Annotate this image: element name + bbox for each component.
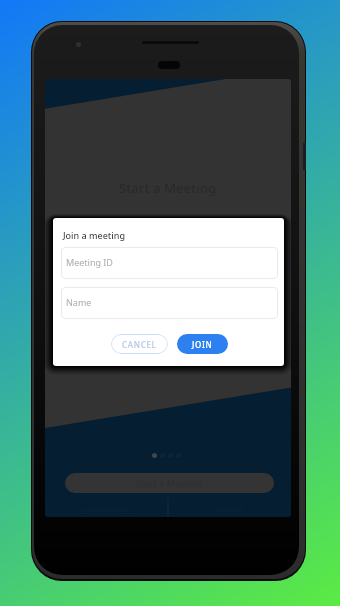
staticText: JOIN [192, 339, 213, 350]
staticText: Meeting ID [66, 256, 113, 268]
staticText: CANCEL [122, 339, 157, 350]
staticText: Name [66, 296, 92, 308]
button[interactable]: Name [61, 287, 278, 319]
staticText: Start a Meeting [119, 179, 217, 197]
button[interactable]: Start a Meeting [65, 473, 274, 493]
button[interactable]: CANCEL [111, 334, 168, 354]
button[interactable]: JOIN [177, 334, 228, 354]
staticText: Join a meeting [63, 229, 125, 241]
button[interactable]: Meeting ID [61, 247, 278, 279]
